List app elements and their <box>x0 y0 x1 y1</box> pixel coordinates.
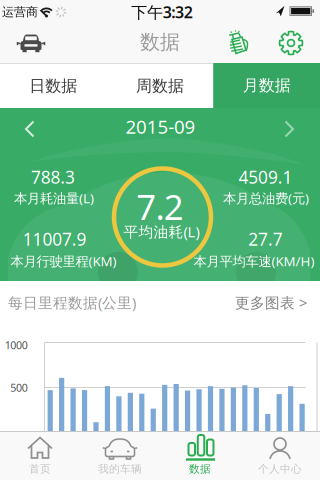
staticText: 首页 <box>29 462 51 475</box>
staticText: 数据 <box>140 30 180 54</box>
button[interactable]: 首页 <box>0 431 80 480</box>
staticText: 我的车辆 <box>98 462 142 475</box>
button[interactable]: 月数据 <box>213 63 320 108</box>
staticText: 本月平均车速(KM/H) <box>193 252 314 270</box>
staticText: 1000 <box>5 338 28 352</box>
staticText: 周数据 <box>136 76 184 96</box>
staticText: 下午3:32 <box>131 1 193 23</box>
staticText: 4509.1 <box>238 165 292 188</box>
staticText: 788.3 <box>31 165 75 188</box>
staticText: 个人中心 <box>258 462 302 475</box>
button[interactable]: 下一月 <box>281 119 297 138</box>
staticText: 本月行驶里程(KM) <box>10 252 116 270</box>
button[interactable]: 数据 <box>160 431 240 480</box>
button[interactable]: 个人中心 <box>240 431 320 480</box>
staticText: 7.2 <box>136 183 184 229</box>
button[interactable]: 日数据 <box>0 64 107 108</box>
staticText: 月数据 <box>243 76 291 95</box>
button[interactable]: 我的车辆 <box>80 431 160 480</box>
button[interactable]: 洗车加油 <box>223 30 253 56</box>
staticText: 更多图表 > <box>235 293 307 312</box>
staticText: 日数据 <box>29 76 77 96</box>
button[interactable]: 更多图表 > <box>235 293 307 312</box>
staticText: 每日里程数据(公里) <box>8 293 136 312</box>
button[interactable]: 车辆 <box>15 32 47 54</box>
button[interactable]: 周数据 <box>107 64 213 108</box>
button[interactable]: 上一月 <box>22 119 38 138</box>
staticText: 2015-09 <box>125 114 196 139</box>
button[interactable]: 设置 <box>278 30 304 56</box>
staticText: 500 <box>10 380 28 395</box>
staticText: 27.7 <box>248 227 283 250</box>
staticText: 11007.9 <box>23 227 87 250</box>
staticText: 平均油耗(L) <box>123 222 199 241</box>
staticText: 本月耗油量(L) <box>14 189 94 207</box>
staticText: 运营商 <box>2 5 38 19</box>
staticText: 本月总油费(元) <box>223 189 309 207</box>
staticText: 数据 <box>189 462 211 475</box>
